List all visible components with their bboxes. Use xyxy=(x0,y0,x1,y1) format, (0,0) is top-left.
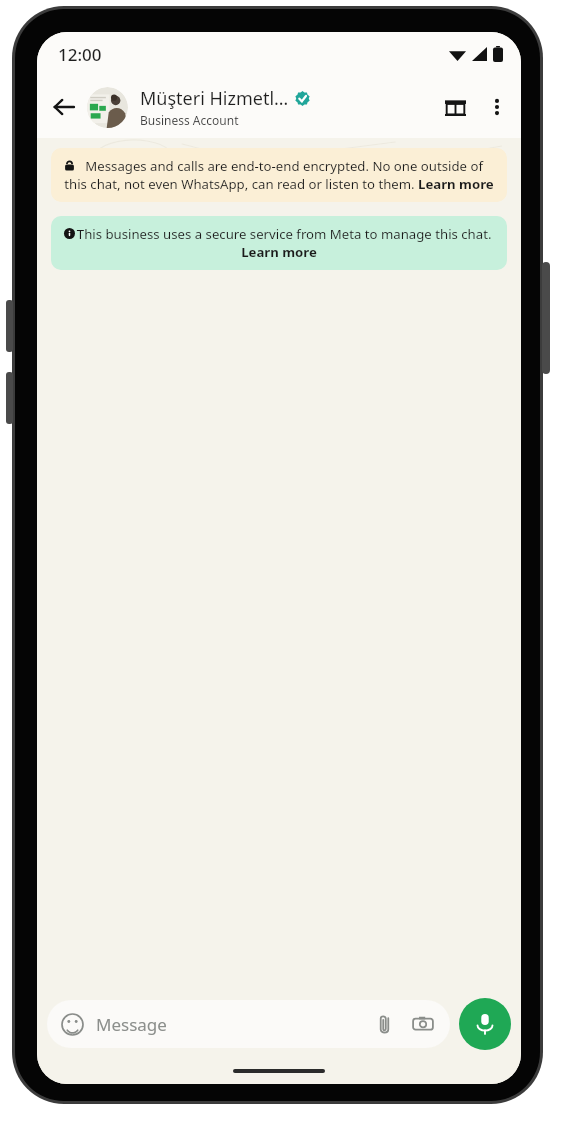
button[interactable]: Emoji xyxy=(47,1000,450,1048)
staticText: Message xyxy=(96,1013,369,1036)
button[interactable]: Profile photo xyxy=(87,87,128,128)
staticText: 12:00 xyxy=(58,43,102,66)
button[interactable]: Müşteri Hizmetl… xyxy=(140,86,433,128)
button[interactable]: Attach xyxy=(369,1009,399,1039)
button[interactable]: More options xyxy=(477,87,517,127)
staticText: Müşteri Hizmetl… xyxy=(140,86,289,111)
button[interactable]: Camera xyxy=(408,1009,438,1039)
button[interactable]: This business uses a secure service from… xyxy=(51,216,507,270)
staticText: Business Account xyxy=(140,112,239,128)
button[interactable]: Record voice message xyxy=(459,998,511,1050)
button[interactable]: Business catalog xyxy=(433,85,477,129)
staticText: This business uses a secure service from… xyxy=(63,225,495,261)
staticText: Messages and calls are end-to-end encryp… xyxy=(63,157,495,193)
button[interactable]: Messages and calls are end-to-end encryp… xyxy=(51,148,507,202)
button[interactable]: Emoji xyxy=(59,1011,85,1037)
button[interactable]: Back xyxy=(43,86,85,128)
